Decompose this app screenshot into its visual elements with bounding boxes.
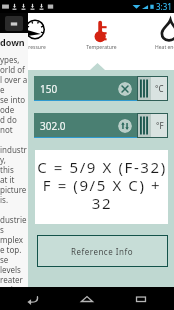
button[interactable]: 302.0 xyxy=(34,113,137,138)
button[interactable]: Notification xyxy=(5,16,23,31)
button[interactable]: Heat energy xyxy=(146,13,174,70)
button[interactable]: 150 xyxy=(34,76,137,101)
staticText: Temperature xyxy=(86,44,117,51)
button[interactable]: Temperature xyxy=(78,13,124,70)
button[interactable]: Pressure xyxy=(12,13,58,70)
button[interactable]: Clear xyxy=(118,82,132,96)
staticText: 150 xyxy=(40,82,58,96)
button[interactable]: Swap units xyxy=(118,119,132,133)
button[interactable]: Reference Info xyxy=(37,235,168,267)
staticText: Pressure xyxy=(25,44,46,51)
staticText: 3:31 xyxy=(156,1,172,12)
button[interactable]: Select unit xyxy=(137,113,168,138)
button[interactable]: Back xyxy=(12,287,54,310)
button[interactable]: Recents xyxy=(120,287,162,310)
staticText: down xyxy=(0,36,25,48)
staticText: C = 5/9 X (F-32) F = (9/5 X C) + 32 xyxy=(37,157,167,214)
button[interactable]: Home xyxy=(66,287,108,310)
staticText: Reference Info xyxy=(71,246,134,257)
staticText: ypes, orld of l over a e se into ode d d… xyxy=(0,54,28,310)
staticText: °F xyxy=(156,120,164,131)
button[interactable]: Select unit xyxy=(137,76,168,101)
staticText: 302.0 xyxy=(40,119,66,133)
staticText: Heat energy xyxy=(155,44,174,51)
staticText: °C xyxy=(155,83,164,94)
